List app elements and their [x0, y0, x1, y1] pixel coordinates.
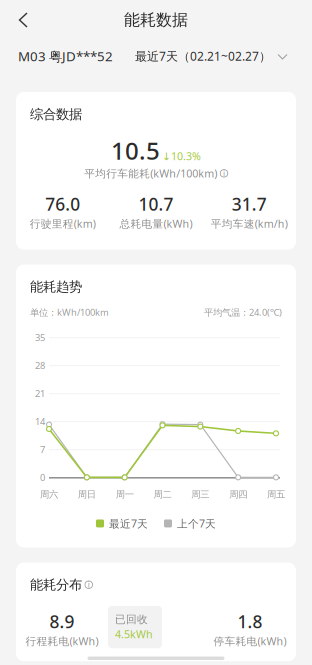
button[interactable]: Back: [8, 4, 40, 36]
staticText: i: [88, 579, 90, 590]
button[interactable]: 最近7天（02.21~02.27）: [135, 48, 288, 64]
staticText: 停车耗电(kWh): [213, 634, 286, 648]
staticText: 76.0: [45, 192, 80, 215]
staticText: 周一: [116, 489, 134, 500]
staticText: i: [223, 168, 225, 179]
staticText: 周四: [229, 489, 247, 500]
staticText: 35: [35, 331, 45, 344]
staticText: 已回收: [115, 613, 148, 626]
staticText: 行驶里程(km): [30, 216, 96, 231]
staticText: 14: [35, 415, 45, 428]
staticText: 28: [35, 359, 45, 372]
staticText: 综合数据: [30, 106, 82, 122]
staticText: 7: [40, 443, 45, 456]
staticText: 周三: [191, 489, 209, 500]
staticText: 上个7天: [177, 516, 216, 531]
staticText: 10.7: [138, 192, 173, 215]
staticText: M03 粤JD***52: [18, 47, 113, 65]
staticText: 平均车速(km/h): [211, 216, 288, 231]
staticText: 31.7: [232, 192, 267, 215]
staticText: ↓10.3%: [162, 149, 201, 163]
staticText: 平均气温：24.0(℃): [204, 306, 282, 318]
staticText: 能耗趋势: [30, 279, 82, 295]
staticText: 最近7天: [109, 516, 148, 531]
staticText: 0: [40, 471, 45, 484]
staticText: 行程耗电(kWh): [25, 634, 98, 648]
staticText: 周五: [267, 489, 285, 500]
staticText: 总耗电量(kWh): [119, 216, 192, 231]
staticText: 能耗分布: [30, 576, 82, 593]
staticText: 1.8: [237, 610, 262, 633]
staticText: 能耗数据: [124, 10, 188, 30]
staticText: 周日: [78, 489, 96, 500]
staticText: 最近7天（02.21~02.27）: [135, 48, 271, 64]
staticText: 4.5kWh: [115, 627, 153, 641]
staticText: 单位：kWh/100km: [30, 306, 109, 318]
staticText: 周二: [153, 489, 171, 500]
staticText: 8.9: [49, 610, 74, 633]
staticText: 10.5: [111, 134, 160, 166]
staticText: 21: [35, 387, 45, 400]
staticText: 平均行车能耗(kWh/100km): [84, 166, 217, 180]
staticText: 周六: [40, 489, 58, 500]
